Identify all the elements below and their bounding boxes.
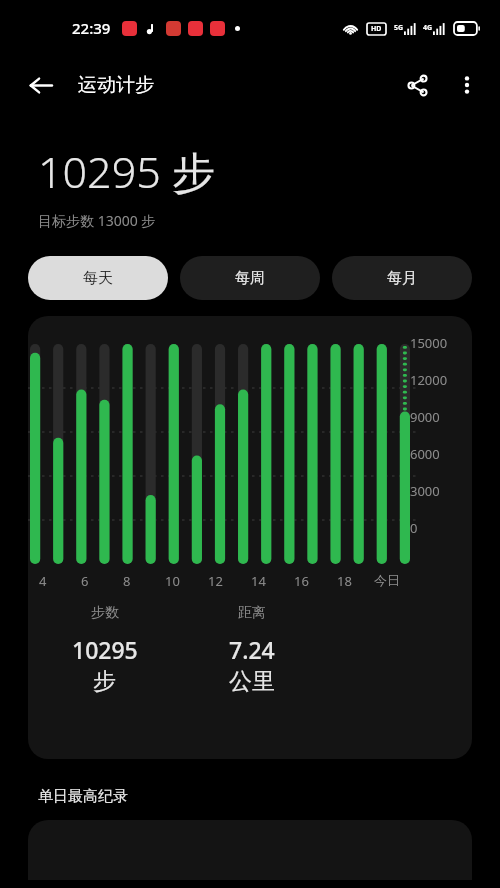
staticText: 9000 (410, 408, 440, 426)
button[interactable]: Back (16, 61, 64, 109)
staticText: 每周 (235, 269, 265, 288)
staticText: 今日 (374, 572, 400, 588)
staticText: 距离 (238, 604, 266, 622)
staticText: 5G (394, 23, 404, 33)
staticText: 22:39 (72, 18, 111, 38)
staticText: HD (371, 24, 382, 34)
staticText: 16 (294, 572, 309, 590)
button[interactable]: 每周 (180, 256, 320, 300)
button[interactable]: Share (392, 60, 442, 110)
staticText: 18 (337, 572, 352, 590)
staticText: 4 (39, 572, 47, 590)
button[interactable]: 15000 (28, 316, 472, 759)
staticText: 12000 (410, 371, 448, 389)
staticText: 10 (165, 572, 180, 590)
button[interactable]: 每月 (332, 256, 472, 300)
staticText: 目标步数 13000 步 (38, 211, 156, 230)
staticText: 公里 (229, 667, 275, 696)
staticText: 4G (423, 23, 433, 33)
staticText: 6 (81, 572, 89, 590)
button[interactable]: More options (442, 60, 492, 110)
staticText: 步 (93, 667, 116, 696)
staticText: 8 (123, 572, 131, 590)
staticText: 每月 (387, 269, 417, 288)
staticText: 0 (410, 519, 418, 537)
staticText: 单日最高纪录 (38, 787, 128, 806)
staticText: 15000 (410, 334, 448, 352)
staticText: 6000 (410, 445, 440, 463)
button[interactable]: 每天 (28, 256, 168, 300)
staticText: 步数 (91, 604, 119, 622)
staticText: 每天 (83, 269, 113, 288)
staticText: 14 (251, 572, 266, 590)
staticText: 3000 (410, 482, 440, 500)
staticText: 运动计步 (78, 73, 154, 97)
staticText: 12 (208, 572, 223, 590)
staticText: 7.24 (229, 634, 275, 665)
staticText: 10295 步 (38, 142, 215, 201)
staticText: 10295 (72, 634, 138, 665)
